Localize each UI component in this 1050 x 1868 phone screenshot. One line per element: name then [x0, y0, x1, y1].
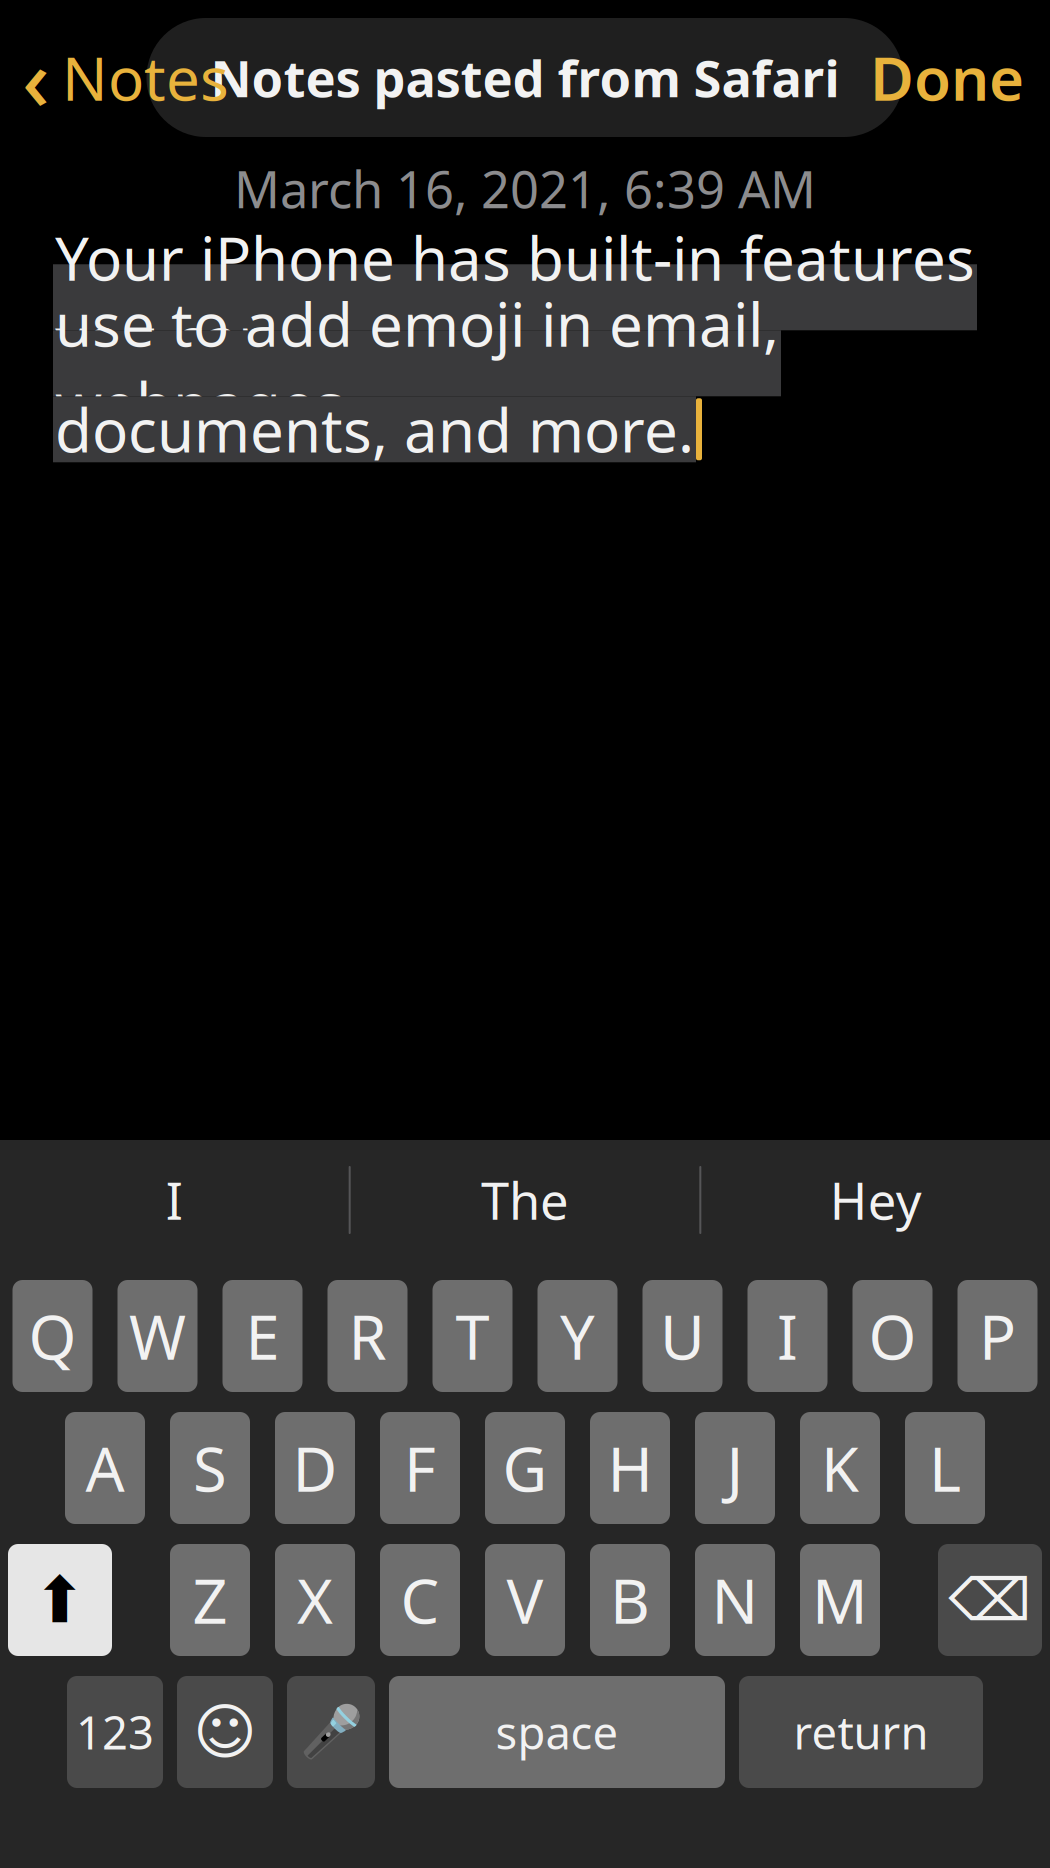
staticText: ☺ [193, 1697, 257, 1767]
button[interactable]: Emoji [177, 1676, 273, 1788]
staticText: D [292, 1427, 337, 1509]
button[interactable]: The [351, 1140, 699, 1260]
staticText: Your iPhone has built-in features you ca… [55, 218, 975, 377]
staticText: use to add emoji in email, webpages, [55, 284, 779, 443]
staticText: ⬆ [33, 1564, 87, 1636]
staticText: G [502, 1427, 547, 1509]
button[interactable]: F [380, 1412, 460, 1524]
staticText: S [193, 1427, 227, 1509]
button[interactable]: E [222, 1280, 302, 1392]
button[interactable]: S [170, 1412, 250, 1524]
staticText: return [793, 1702, 928, 1762]
button[interactable]: Z [170, 1544, 250, 1656]
staticText: O [868, 1295, 916, 1377]
button[interactable]: C [380, 1544, 460, 1656]
staticText: K [821, 1427, 859, 1509]
staticText: A [85, 1427, 124, 1509]
staticText: 🎤 [299, 1703, 362, 1761]
button[interactable]: A [65, 1412, 145, 1524]
staticText: R [348, 1295, 386, 1377]
button[interactable]: Numbers [67, 1676, 163, 1788]
staticText: P [979, 1295, 1016, 1377]
staticText: B [610, 1559, 650, 1641]
staticText: Hey [830, 1166, 922, 1234]
staticText: ⌫ [948, 1567, 1031, 1633]
staticText: N [711, 1559, 758, 1641]
staticText: Notes pasted from Safari [210, 44, 839, 111]
staticText: M [812, 1559, 868, 1641]
button[interactable]: Q [12, 1280, 92, 1392]
button[interactable]: return [739, 1676, 983, 1788]
staticText: W [129, 1295, 186, 1377]
staticText: C [400, 1559, 439, 1641]
staticText: I [777, 1295, 798, 1377]
button[interactable]: W [117, 1280, 197, 1392]
button[interactable]: B [590, 1544, 670, 1656]
button[interactable]: I [747, 1280, 827, 1392]
button[interactable]: I [0, 1140, 349, 1260]
button[interactable]: Delete [938, 1544, 1042, 1656]
button[interactable]: T [432, 1280, 512, 1392]
button[interactable]: K [800, 1412, 880, 1524]
button[interactable]: Dictation [287, 1676, 375, 1788]
button[interactable]: D [275, 1412, 355, 1524]
staticText: space [495, 1702, 618, 1762]
staticText: E [245, 1295, 279, 1377]
button[interactable]: J [695, 1412, 775, 1524]
staticText: V [506, 1559, 543, 1641]
button[interactable]: Done [870, 22, 1050, 133]
staticText: J [726, 1427, 743, 1509]
button[interactable]: U [642, 1280, 722, 1392]
staticText: 123 [76, 1702, 154, 1762]
button[interactable]: Y [537, 1280, 617, 1392]
staticText: X [297, 1559, 333, 1641]
staticText: U [660, 1295, 705, 1377]
button[interactable]: N [695, 1544, 775, 1656]
button[interactable]: O [852, 1280, 932, 1392]
staticText: ‹ [22, 21, 50, 134]
button[interactable]: L [905, 1412, 985, 1524]
button[interactable]: Hey [701, 1140, 1050, 1260]
staticText: March 16, 2021, 6:39 AM [234, 155, 816, 222]
staticText: T [455, 1295, 489, 1377]
staticText: I [166, 1166, 183, 1234]
staticText: Z [192, 1559, 227, 1641]
staticText: H [607, 1427, 652, 1509]
staticText: F [404, 1427, 436, 1509]
staticText: Notes [62, 38, 229, 117]
staticText: Q [28, 1295, 76, 1377]
staticText: Y [560, 1295, 595, 1377]
button[interactable]: H [590, 1412, 670, 1524]
staticText: The [481, 1166, 569, 1234]
button[interactable]: Shift [8, 1544, 112, 1656]
staticText: documents, and more. [55, 389, 694, 469]
button[interactable]: space [389, 1676, 725, 1788]
staticText: L [929, 1427, 961, 1509]
button[interactable]: P [957, 1280, 1037, 1392]
button[interactable]: G [485, 1412, 565, 1524]
button[interactable]: X [275, 1544, 355, 1656]
button[interactable]: ‹ [0, 5, 229, 150]
button[interactable]: V [485, 1544, 565, 1656]
button[interactable]: R [327, 1280, 407, 1392]
button[interactable]: M [800, 1544, 880, 1656]
staticText: Done [870, 38, 1024, 117]
